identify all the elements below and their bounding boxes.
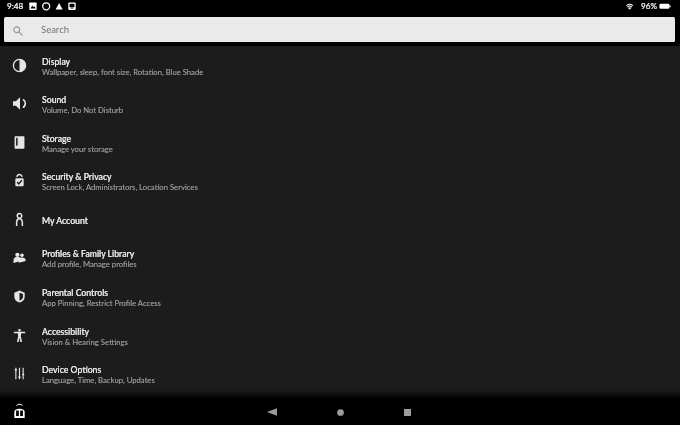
button[interactable]: My Account (0, 200, 680, 239)
staticText: Volume, Do Not Disturb (42, 105, 124, 114)
staticText: My Account (42, 215, 88, 225)
staticText: Storage (42, 133, 72, 143)
staticText: Manage your storage (42, 144, 113, 153)
staticText: Screen Lock, Administrators, Location Se… (42, 182, 198, 191)
staticText: Device Options (42, 364, 102, 374)
staticText: Wallpaper, sleep, font size, Rotation, B… (42, 67, 204, 76)
button[interactable]: Security & Privacy (0, 161, 680, 200)
staticText: 96% (641, 1, 657, 11)
button[interactable]: Recent apps (387, 399, 427, 425)
staticText: 9:48 (7, 1, 24, 11)
staticText: Language, Time, Backup, Updates (42, 375, 155, 384)
staticText: Security & Privacy (42, 171, 112, 181)
button[interactable]: Back (253, 399, 293, 425)
staticText: Sound (42, 94, 67, 104)
button[interactable]: Search (4, 17, 675, 42)
button[interactable]: Home (320, 399, 360, 425)
staticText: Add profile, Manage profiles (42, 259, 137, 268)
button[interactable]: Display (0, 46, 680, 85)
button[interactable]: Parental Controls (0, 277, 680, 316)
button[interactable]: Accessibility (0, 316, 680, 355)
button[interactable]: Storage (0, 123, 680, 162)
button[interactable]: Device Options (0, 354, 680, 393)
staticText: Profiles & Family Library (42, 248, 135, 258)
button[interactable]: Sound (0, 84, 680, 123)
staticText: Parental Controls (42, 287, 109, 297)
staticText: Display (42, 56, 71, 66)
staticText: Vision & Hearing Settings (42, 337, 128, 346)
button[interactable]: Profiles & Family Library (0, 238, 680, 277)
staticText: App Pinning, Restrict Profile Access (42, 298, 161, 307)
staticText: Search (41, 24, 69, 35)
staticText: Accessibility (42, 326, 90, 336)
button[interactable]: Screenshot (14, 406, 25, 418)
